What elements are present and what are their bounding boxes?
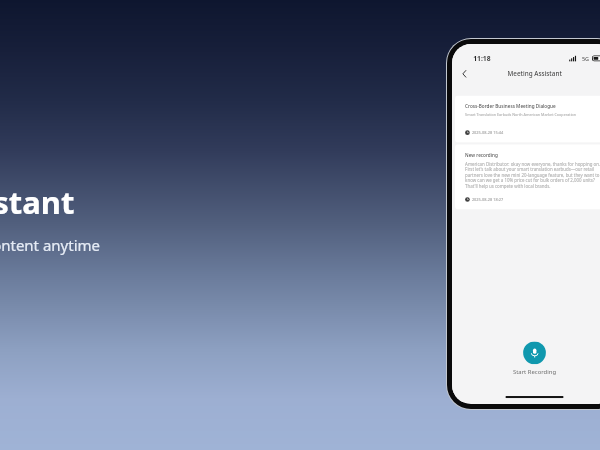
staticText: 2025-08-28 18:27 <box>472 197 503 202</box>
staticText: Cross-Border Business Meeting Dialogue <box>465 103 556 109</box>
staticText: Record and transcribe content anytime <box>0 235 101 255</box>
button[interactable]: Cross-Border Business Meeting Dialogue <box>455 96 600 143</box>
staticText: Meeting Assistant <box>507 69 562 78</box>
staticText: 2025-08-28 15:44 <box>472 130 503 135</box>
staticText: 11:18 <box>473 54 491 63</box>
button[interactable]: Start Recording <box>523 341 546 364</box>
button[interactable]: Back <box>457 66 471 81</box>
staticText: American Distributor: okay now everyone,… <box>465 161 600 189</box>
staticText: New recording <box>465 151 498 158</box>
staticText: AI Meeting Assistant <box>0 181 75 223</box>
staticText: 5G <box>582 55 589 62</box>
staticText: Start Recording <box>513 368 556 376</box>
staticText: Smart Translation Earbuds North American… <box>465 112 576 118</box>
button[interactable]: New recording <box>455 144 600 209</box>
